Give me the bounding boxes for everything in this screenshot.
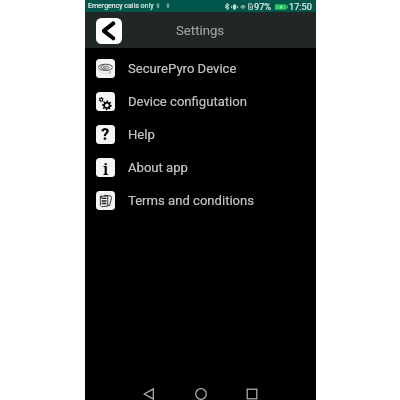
- staticText: About app: [128, 160, 188, 175]
- button[interactable]: Back: [96, 18, 122, 44]
- button[interactable]: Device configutation: [85, 85, 316, 118]
- button[interactable]: SecurePyro Device: [85, 52, 316, 85]
- staticText: SecurePyro Device: [128, 61, 237, 76]
- staticText: i: [103, 158, 109, 177]
- staticText: Device configutation: [128, 94, 247, 109]
- staticText: Help: [128, 127, 155, 142]
- button[interactable]: Back: [137, 388, 161, 400]
- staticText: ?: [101, 125, 110, 144]
- staticText: Emergency calls only: [88, 2, 154, 10]
- button[interactable]: Terms and conditions: [85, 184, 316, 217]
- button[interactable]: Recents: [240, 388, 264, 400]
- button[interactable]: Home: [189, 388, 213, 400]
- button[interactable]: i: [85, 151, 316, 184]
- staticText: 97%: [254, 1, 272, 12]
- button[interactable]: ?: [85, 118, 316, 151]
- staticText: Terms and conditions: [128, 193, 255, 208]
- staticText: Settings: [176, 23, 225, 38]
- staticText: 17:50: [289, 1, 312, 12]
